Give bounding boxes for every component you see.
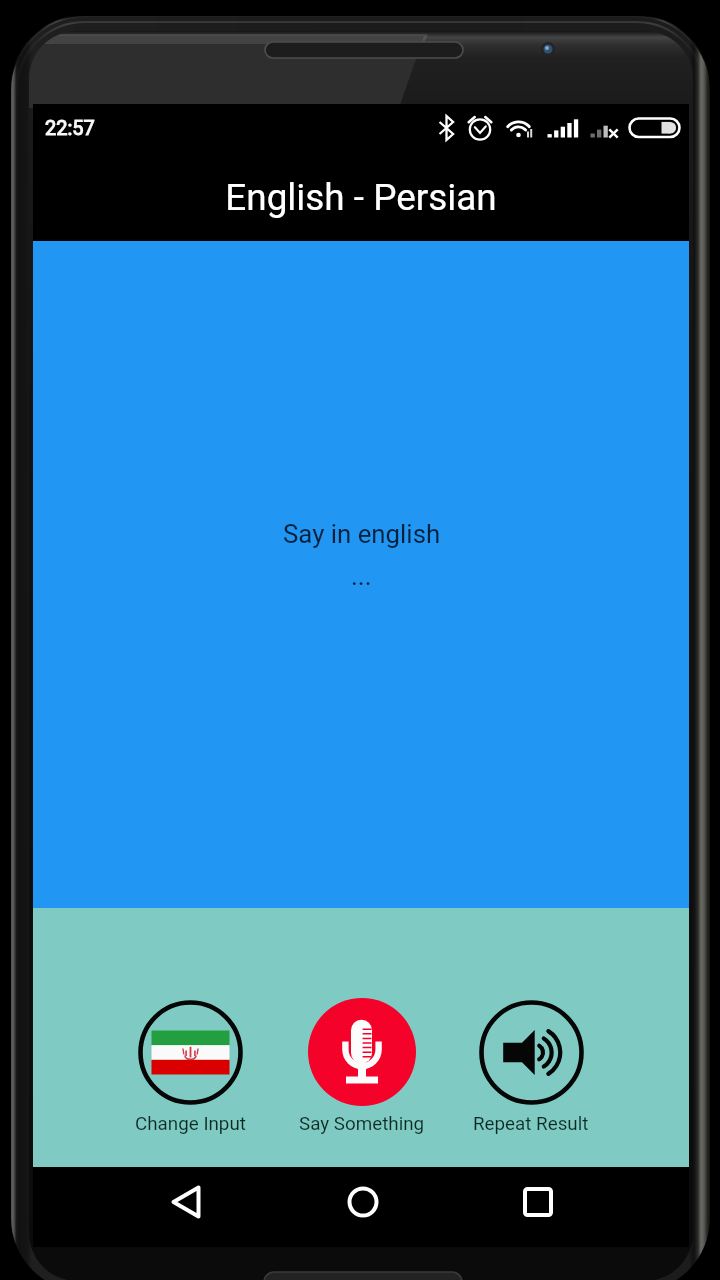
staticText: 22:57	[45, 116, 95, 139]
other: Repeat Result	[479, 1000, 584, 1105]
staticText: ...	[351, 561, 372, 591]
button[interactable]: Change Input	[105, 996, 275, 1135]
button[interactable]: Say Something	[277, 994, 447, 1135]
staticText: English - Persian	[225, 176, 497, 219]
staticText: Change Input	[135, 1113, 246, 1135]
staticText: Repeat Result	[473, 1113, 589, 1135]
button[interactable]: Home	[331, 1170, 395, 1234]
button[interactable]: Repeat Result	[446, 996, 616, 1135]
button[interactable]: Recents	[506, 1170, 570, 1234]
staticText: Say in english	[283, 519, 441, 549]
other: Say Something	[308, 998, 416, 1106]
other: Change Input	[138, 1000, 243, 1105]
button[interactable]: Back	[155, 1170, 219, 1234]
staticText: Say Something	[299, 1113, 425, 1135]
